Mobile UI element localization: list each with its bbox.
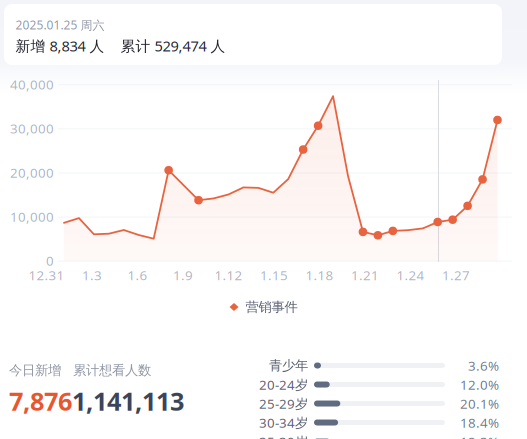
staticText: 1.9 — [173, 266, 193, 284]
staticText: 30,000 — [10, 119, 54, 137]
staticText: 20.1% — [460, 395, 499, 412]
staticText: 20,000 — [10, 164, 54, 181]
staticText: 3.6% — [468, 357, 499, 374]
staticText: 今日新增 — [9, 362, 61, 378]
staticText: 1.12 — [215, 266, 243, 284]
staticText: 1.6 — [128, 266, 148, 284]
staticText: 1,141,113 — [72, 384, 184, 418]
staticText: 营销事件 — [245, 299, 297, 315]
staticText: 10,000 — [10, 208, 54, 225]
staticText: 12.31 — [29, 266, 65, 284]
staticText: 30-34岁 — [259, 414, 308, 431]
staticText: 1.24 — [397, 266, 425, 284]
staticText: 7,876 — [9, 384, 72, 418]
staticText: 20-24岁 — [259, 376, 308, 393]
staticText: 12.0% — [460, 376, 499, 393]
staticText: 35-39岁 — [259, 433, 308, 439]
staticText: 青少年 — [269, 357, 308, 374]
staticText: 18.4% — [460, 414, 499, 431]
staticText: 2025.01.25 周六 — [15, 17, 104, 33]
staticText: 新增 8,834 人 累计 529,474 人 — [15, 36, 225, 55]
staticText: 累计想看人数 — [73, 362, 151, 378]
staticText: 25-29岁 — [259, 395, 308, 412]
staticText: 12.3% — [460, 433, 499, 439]
staticText: 1.21 — [351, 266, 379, 284]
staticText: 40,000 — [10, 75, 54, 93]
staticText: 0 — [46, 252, 54, 269]
staticText: 1.27 — [442, 266, 470, 284]
staticText: 1.3 — [82, 266, 102, 284]
staticText: 1.18 — [306, 266, 334, 284]
staticText: 1.15 — [260, 266, 288, 284]
